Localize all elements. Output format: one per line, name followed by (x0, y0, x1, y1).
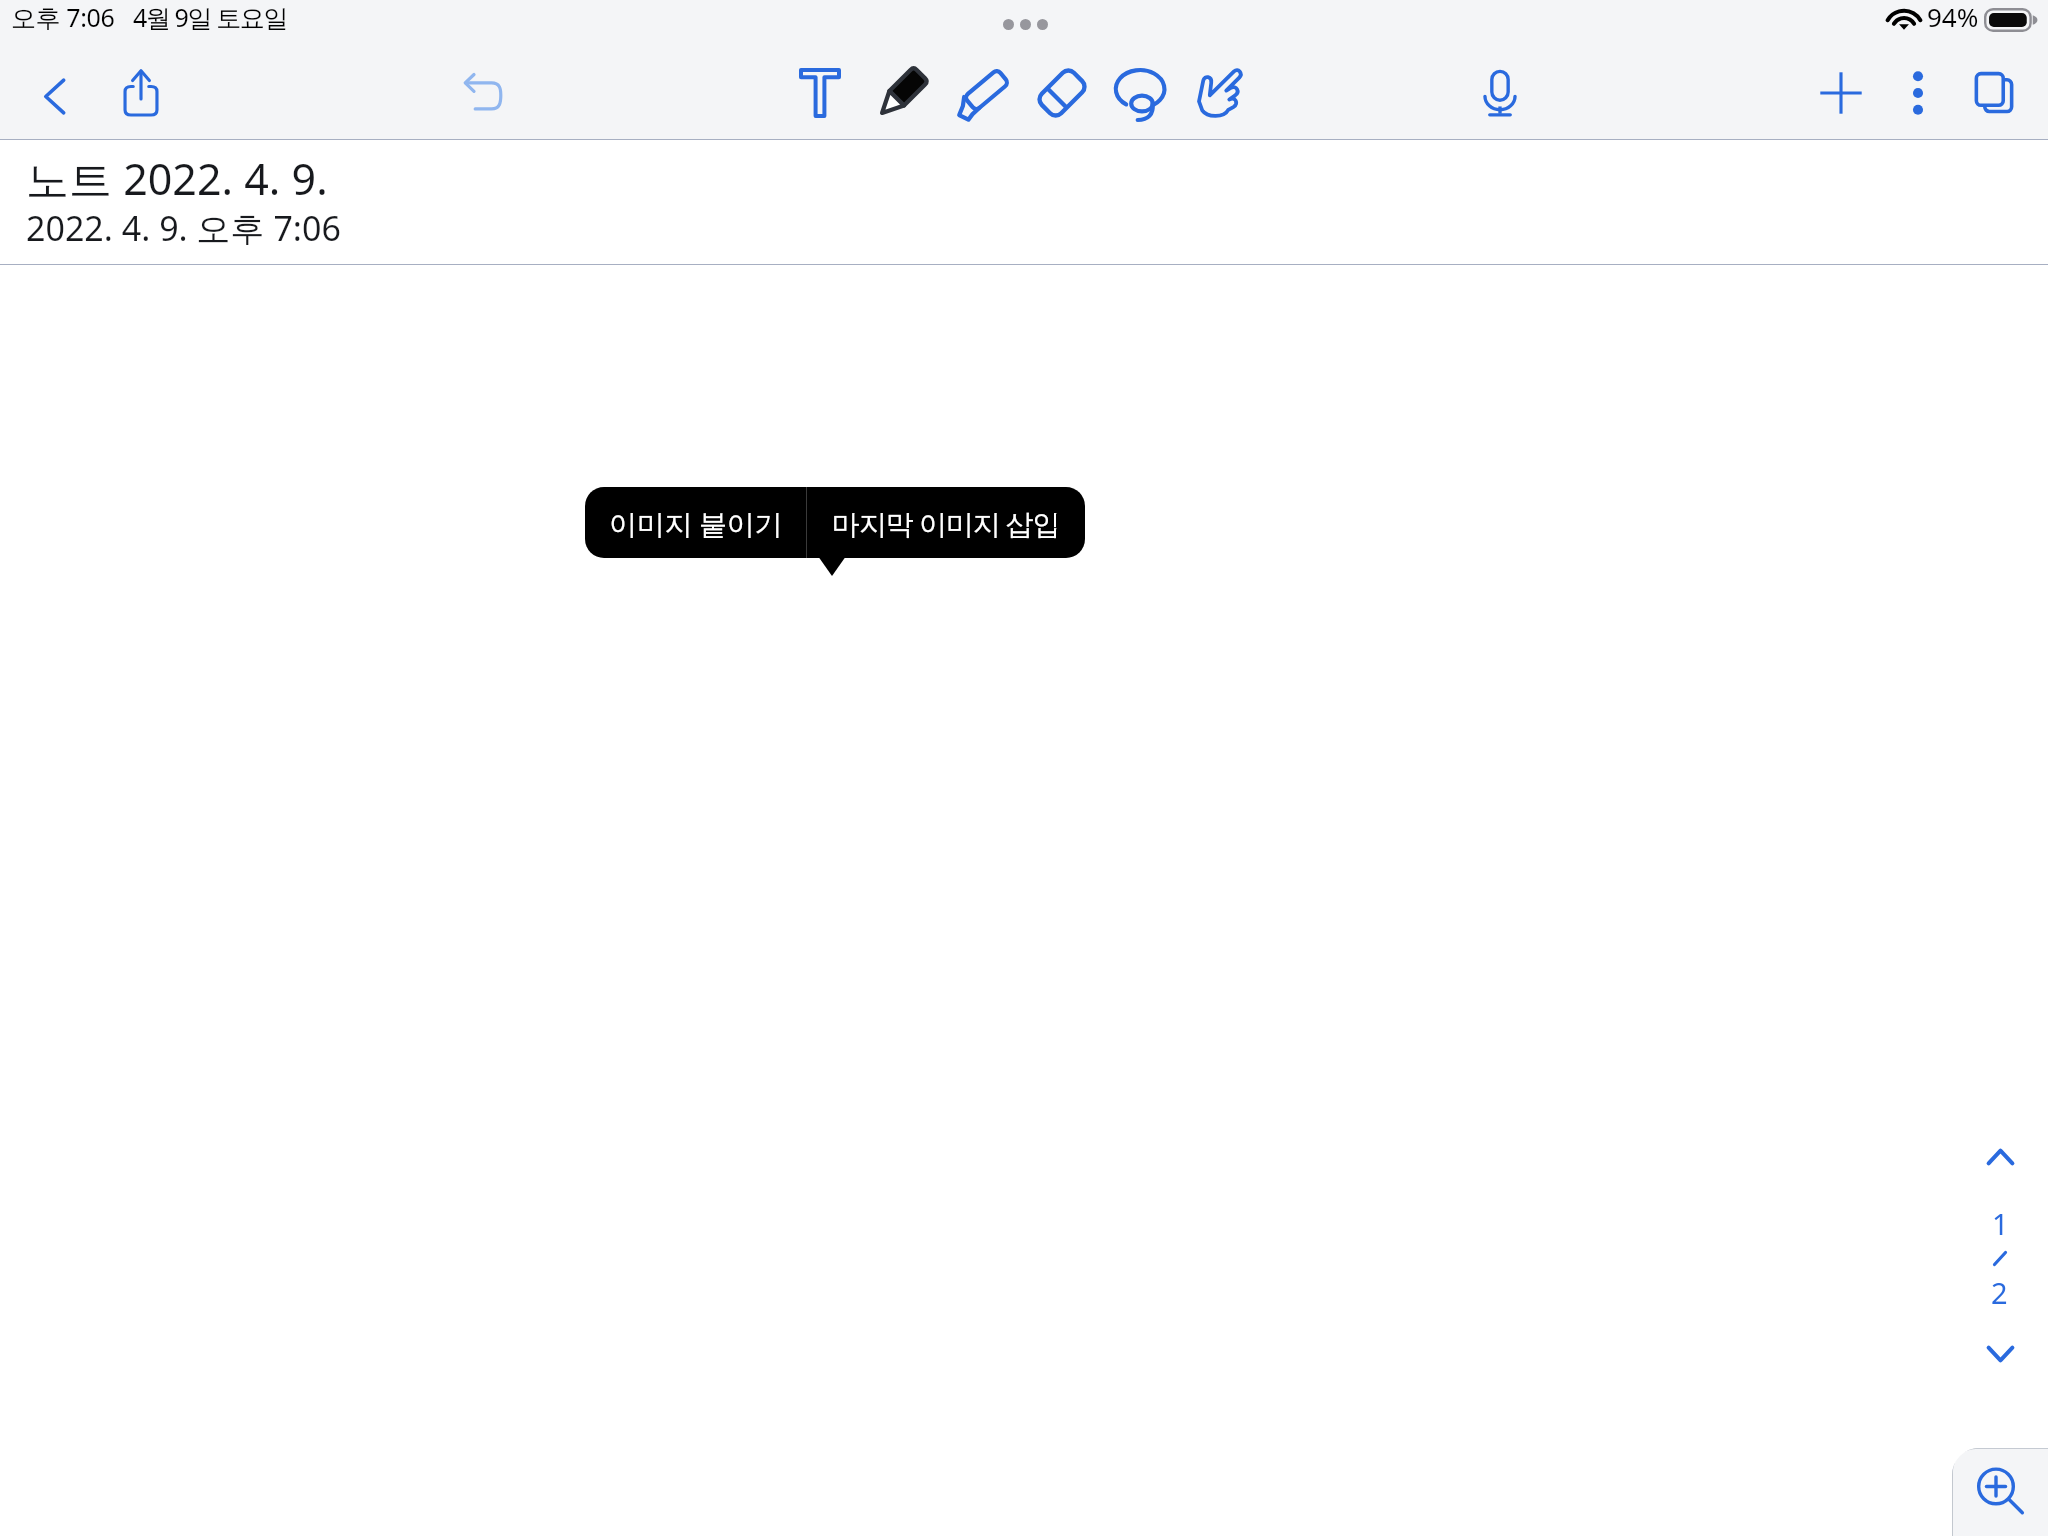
staticText: 2 (1991, 1273, 2008, 1312)
button[interactable]: Voice recording (1469, 62, 1531, 124)
button[interactable]: Undo (451, 62, 513, 124)
button[interactable]: Share (110, 62, 172, 124)
staticText: 94% (1927, 0, 1979, 34)
button[interactable]: 이미지 붙이기 (585, 487, 806, 558)
button[interactable]: Lasso (1111, 62, 1173, 124)
button[interactable]: More options (1887, 62, 1949, 124)
button[interactable]: Previous page (1962, 1131, 2038, 1183)
button[interactable]: Pen (870, 62, 932, 124)
button[interactable]: Back (23, 65, 85, 127)
button[interactable]: Eraser (1031, 62, 1093, 124)
button[interactable]: Zoom in (1952, 1448, 2048, 1536)
button[interactable]: Add (1810, 62, 1872, 124)
staticText: 오후 7:06 (11, 0, 115, 34)
button[interactable]: Highlighter (952, 62, 1014, 124)
staticText: 4월 9일 토요일 (133, 0, 288, 34)
button[interactable]: Hand (1188, 62, 1250, 124)
button[interactable]: Next page (1962, 1328, 2038, 1380)
button[interactable]: Text (789, 62, 851, 124)
button[interactable]: 마지막 이미지 삽입 (807, 487, 1085, 558)
button[interactable]: Pages (1963, 62, 2025, 124)
staticText: 1 (1992, 1204, 2009, 1243)
staticText: 2022. 4. 9. 오후 7:06 (26, 205, 341, 251)
staticText: 이미지 붙이기 (609, 504, 783, 542)
staticText: 노트 2022. 4. 9. (26, 149, 328, 208)
staticText: 마지막 이미지 삽입 (832, 504, 1060, 542)
